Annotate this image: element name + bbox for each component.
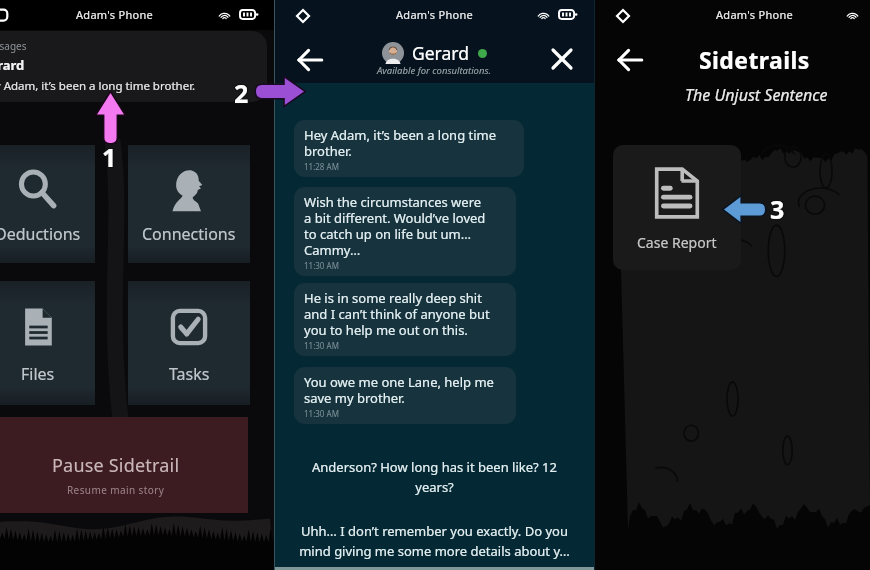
staticText: 1 [101,141,116,175]
staticText: 3 [769,193,784,227]
staticText: 3 [769,192,784,226]
staticText: 3 [770,192,785,226]
button[interactable]: Connections [128,145,250,263]
staticText: Gerard [412,41,469,65]
button[interactable]: You owe me one Lane, help me save my bro… [294,367,516,424]
staticText: Uhh… I don’t remember you exactly. Do yo… [293,522,576,560]
staticText: 3 [771,191,786,225]
staticText: 2 [235,75,250,109]
staticText: Case Report [637,233,717,252]
other: Messages [0,8,9,25]
staticText: 11:30 AM [304,340,339,351]
staticText: Connections [142,223,236,245]
staticText: 3 [771,193,786,227]
staticText: 11:28 AM [304,161,339,172]
staticText: Sidetrails [699,44,810,75]
staticText: Gerard [0,56,25,74]
staticText: 2 [235,76,250,110]
staticText: 2 [233,77,248,111]
button[interactable]: Back [288,38,332,82]
staticText: Hey Adam, it’s been a long time brother. [304,126,497,159]
staticText: Pause Sidetrail [52,453,180,478]
button[interactable]: He is in some really deep shit and I can… [294,283,516,356]
other: Menu [616,9,630,23]
staticText: Adam's Phone [76,7,154,22]
staticText: 2 [235,77,250,111]
staticText: Available for consultations. [377,64,492,77]
staticText: He is in some really deep shit and I can… [304,289,490,338]
staticText: 1 [102,140,117,174]
staticText: Adam's Phone [716,7,794,22]
staticText: The Unjust Sentence [685,84,828,106]
staticText: 11:30 AM [304,260,339,271]
staticText: Hey Adam, it’s been a long time brother. [0,78,196,94]
staticText: 2 [234,76,249,110]
staticText: 1 [102,141,117,175]
button[interactable]: Case Report [613,145,741,270]
button[interactable]: Close [541,38,583,80]
staticText: Adam's Phone [396,7,474,22]
staticText: 3 [769,191,784,225]
staticText: Resume main story [67,483,165,497]
staticText: 1 [102,139,117,173]
staticText: 1 [101,139,116,173]
staticText: Tasks [169,363,210,385]
staticText: Wish the circumstances were a bit differ… [304,193,486,258]
button[interactable]: Hey Adam, it’s been a long time brother. [294,120,524,177]
button[interactable]: Tasks [128,281,250,405]
button[interactable]: Files [0,281,95,405]
staticText: 3 [770,193,785,227]
button[interactable]: Pause Sidetrail [0,417,248,513]
staticText: 2 [233,75,248,109]
staticText: 2 [234,75,249,109]
staticText: Deductions [0,223,81,245]
staticText: 1 [103,140,118,174]
staticText: 2 [233,76,248,110]
staticText: 3 [770,191,785,225]
staticText: You owe me one Lane, help me save my bro… [304,373,494,406]
button[interactable]: Messages [0,31,250,102]
button[interactable]: Deductions [0,145,95,263]
button[interactable]: Back [608,38,652,82]
staticText: Anderson? How long has it been like? 12 … [303,458,566,496]
other: Menu [296,9,310,23]
button[interactable]: Wish the circumstances were a bit differ… [294,187,516,276]
staticText: 1 [103,141,118,175]
staticText: 2 [234,77,249,111]
staticText: 3 [771,192,786,226]
staticText: Files [21,363,55,385]
staticText: 1 [101,140,116,174]
staticText: Messages [0,39,27,53]
staticText: 1 [103,139,118,173]
staticText: 11:30 AM [304,408,339,419]
